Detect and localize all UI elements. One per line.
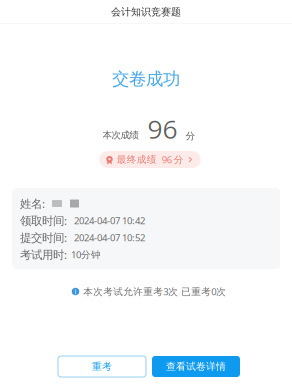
button[interactable]: 最终成绩: [91, 151, 201, 168]
button[interactable]: 重考: [58, 356, 146, 377]
staticText: i: [74, 287, 76, 296]
staticText: 提交时间:: [20, 230, 67, 245]
staticText: 重考: [92, 360, 112, 372]
staticText: 会计知识竞赛题: [111, 6, 181, 18]
staticText: 96: [147, 111, 177, 146]
button[interactable]: 查看试卷详情: [152, 356, 240, 377]
staticText: 领取时间:: [20, 213, 67, 228]
staticText: 分: [185, 130, 195, 142]
staticText: 2024-04-07 10:52: [74, 231, 145, 244]
staticText: 交卷成功: [112, 68, 180, 90]
staticText: 姓名:: [20, 196, 45, 211]
staticText: 10分钟: [71, 248, 101, 261]
staticText: 查看试卷详情: [166, 360, 226, 372]
staticText: 本次考试允许重考3次 已重考0次: [83, 285, 226, 298]
staticText: 96 分: [162, 153, 184, 166]
staticText: 最终成绩: [117, 154, 157, 165]
staticText: 考试用时:: [20, 247, 67, 262]
staticText: 本次成绩: [102, 129, 138, 141]
staticText: 2024-04-07 10:42: [74, 214, 145, 227]
